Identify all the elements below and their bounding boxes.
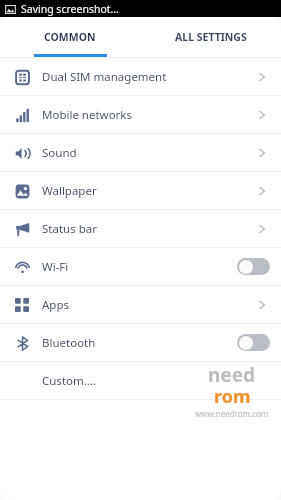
staticText: Saving screenshot… [21,2,119,16]
staticText: Status bar [42,221,97,237]
staticText: Sound [42,145,77,161]
staticText: Custom.... [42,373,97,389]
staticText: COMMON [44,30,96,44]
staticText: Dual SIM management [42,69,167,85]
button[interactable]: Apps [0,286,281,323]
button[interactable]: Toggle [237,334,270,351]
staticText: Apps [42,297,70,313]
staticText: Wi-Fi [42,259,69,275]
button[interactable]: Status bar [0,210,281,247]
button[interactable]: Sound [0,134,281,171]
button[interactable]: Custom.... [0,362,281,399]
staticText: www.needrom.com [195,408,269,419]
staticText: Bluetooth [42,335,96,351]
button[interactable]: Wallpaper [0,172,281,209]
staticText: rom [214,384,251,409]
staticText: need [208,362,256,388]
staticText: ALL SETTINGS [175,30,247,44]
staticText: Mobile networks [42,107,133,123]
staticText: Wallpaper [42,183,97,199]
button[interactable]: ALL SETTINGS [140,17,281,57]
button[interactable]: Bluetooth [0,324,281,361]
button[interactable]: Toggle [237,258,270,275]
button[interactable]: Wi-Fi [0,248,281,285]
button[interactable]: Mobile networks [0,96,281,133]
button[interactable]: Dual SIM management [0,58,281,95]
button[interactable]: COMMON [0,17,140,57]
